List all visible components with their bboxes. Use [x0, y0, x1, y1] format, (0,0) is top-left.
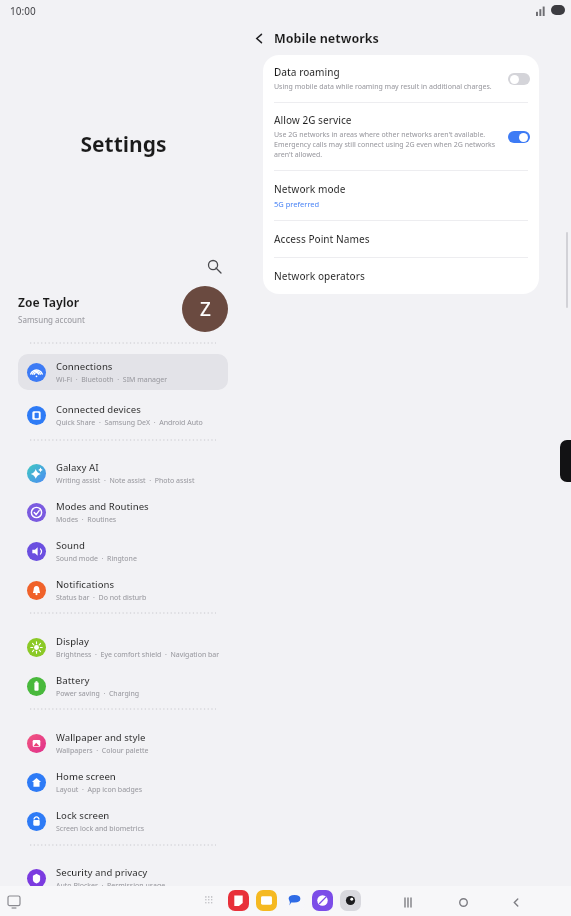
staticText: Samsung account	[18, 314, 85, 325]
staticText: Auto Blocker · Permission usage	[56, 881, 166, 891]
button[interactable]: App	[312, 890, 333, 911]
staticText: Home screen	[56, 770, 116, 783]
staticText: Screen lock and biometrics	[56, 824, 145, 834]
button[interactable]: Battery	[18, 668, 228, 704]
button[interactable]: Edge panel	[560, 440, 571, 482]
staticText: Data roaming	[274, 65, 340, 79]
staticText: Wallpaper and style	[56, 731, 146, 744]
button[interactable]: Home screen	[18, 764, 228, 800]
staticText: Allow 2G service	[274, 113, 352, 127]
button[interactable]: Desktop mode	[4, 892, 23, 911]
button[interactable]: Network operators	[263, 258, 539, 294]
button[interactable]: Notifications	[18, 572, 228, 608]
staticText: Modes · Routines	[56, 515, 117, 525]
staticText: 10:00	[10, 4, 36, 18]
staticText: Network mode	[274, 182, 346, 196]
button[interactable]: Apps	[202, 893, 218, 909]
button[interactable]: Display	[18, 629, 228, 665]
staticText: Brightness · Eye comfort shield · Naviga…	[56, 650, 220, 660]
button[interactable]: On	[508, 131, 530, 143]
button[interactable]: App	[284, 890, 305, 911]
staticText: Security and privacy	[56, 866, 148, 879]
staticText: Lock screen	[56, 809, 110, 822]
staticText: Status bar · Do not disturb	[56, 593, 147, 603]
button[interactable]: Home	[452, 891, 474, 913]
staticText: Battery	[56, 674, 90, 687]
button[interactable]: Back	[248, 26, 379, 50]
button[interactable]: Network mode	[263, 171, 539, 220]
staticText: Z	[200, 296, 211, 322]
button[interactable]: Sound	[18, 533, 228, 569]
staticText: Power saving · Charging	[56, 689, 140, 699]
staticText: Layout · App icon badges	[56, 785, 143, 795]
staticText: Zoe Taylor	[18, 294, 80, 310]
button[interactable]: Connected devices	[18, 397, 228, 433]
button[interactable]: Access Point Names	[263, 221, 539, 257]
staticText: aren't allowed.	[274, 150, 323, 160]
staticText: Settings	[0, 130, 247, 159]
staticText: Connected devices	[56, 403, 141, 416]
staticText: Emergency calls may still connect using …	[274, 140, 496, 150]
staticText: Quick Share · Samsung DeX · Android Auto	[56, 418, 203, 428]
staticText: Notifications	[56, 578, 115, 591]
button[interactable]: Allow 2G service	[263, 103, 539, 170]
staticText: Sound	[56, 539, 85, 552]
button[interactable]: App	[340, 890, 361, 911]
staticText: Use 2G networks in areas where other net…	[274, 130, 486, 140]
button[interactable]: Data roaming	[263, 55, 539, 102]
button[interactable]: Back	[505, 891, 527, 913]
button[interactable]: Connections	[18, 354, 228, 390]
button[interactable]: Zoe Taylor	[18, 284, 228, 334]
staticText: 5G preferred	[274, 199, 320, 209]
button[interactable]: Off	[508, 73, 530, 85]
other: Back	[248, 27, 270, 49]
staticText: Using mobile data while roaming may resu…	[274, 82, 492, 92]
button[interactable]: App	[228, 890, 249, 911]
button[interactable]: Modes and Routines	[18, 494, 228, 530]
button[interactable]: Recents	[397, 891, 419, 913]
staticText: Modes and Routines	[56, 500, 149, 513]
staticText: Display	[56, 635, 90, 648]
staticText: Connections	[56, 360, 113, 373]
staticText: Mobile networks	[274, 30, 379, 47]
button[interactable]: Galaxy AI	[18, 455, 228, 491]
staticText: Wallpapers · Colour palette	[56, 746, 149, 756]
button[interactable]: Security and privacy	[18, 860, 228, 896]
staticText: Writing assist · Note assist · Photo ass…	[56, 476, 195, 486]
staticText: Wi-Fi · Bluetooth · SIM manager	[56, 375, 168, 385]
staticText: Network operators	[274, 269, 365, 283]
button[interactable]: App	[256, 890, 277, 911]
button[interactable]: Lock screen	[18, 803, 228, 839]
button[interactable]: Search	[202, 254, 226, 278]
staticText: Access Point Names	[274, 232, 370, 246]
staticText: Galaxy AI	[56, 461, 99, 474]
button[interactable]: Wallpaper and style	[18, 725, 228, 761]
staticText: Sound mode · Ringtone	[56, 554, 137, 564]
